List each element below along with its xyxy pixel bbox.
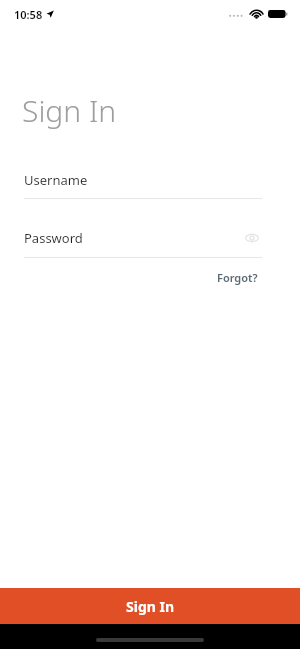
staticText: Password bbox=[24, 229, 83, 247]
button[interactable]: Forgot? bbox=[213, 266, 262, 289]
staticText: Forgot? bbox=[217, 270, 258, 285]
button[interactable]: Show password bbox=[242, 228, 262, 248]
staticText: Sign In bbox=[22, 90, 117, 131]
button[interactable]: Sign In bbox=[0, 588, 300, 624]
staticText: Username bbox=[24, 171, 88, 189]
button[interactable]: Password bbox=[0, 228, 300, 258]
staticText: 10:58 bbox=[14, 7, 43, 22]
staticText: Sign In bbox=[126, 597, 175, 616]
button[interactable]: Username bbox=[0, 171, 300, 199]
